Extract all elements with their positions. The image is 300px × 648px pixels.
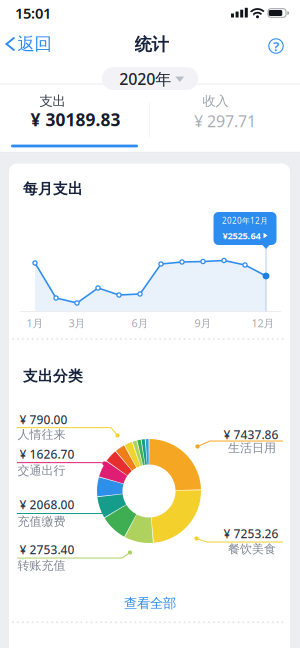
staticText: 人情往来 <box>17 427 65 442</box>
staticText: 12月 <box>251 316 274 330</box>
staticText: ¥ 1626.70 <box>19 446 74 462</box>
staticText: 交通出行 <box>17 463 65 478</box>
button[interactable]: 收入 <box>150 88 300 152</box>
staticText: 3月 <box>68 316 85 330</box>
staticText: 支出 <box>39 93 65 109</box>
staticText: 15:01 <box>15 3 51 23</box>
staticText: ¥ 30189.83 <box>30 108 120 131</box>
staticText: 支出分类 <box>23 367 83 385</box>
staticText: ? <box>273 37 279 55</box>
staticText: 1月 <box>26 316 43 330</box>
staticText: 查看全部 <box>124 595 176 611</box>
button[interactable]: 2020年 <box>102 67 198 90</box>
staticText: 每月支出 <box>23 180 83 198</box>
staticText: 生活日用 <box>228 441 276 455</box>
staticText: 6月 <box>131 316 148 330</box>
staticText: 充值缴费 <box>17 514 65 529</box>
staticText: ¥ 790.00 <box>19 411 67 427</box>
staticText: ¥ 7253.26 <box>223 525 278 541</box>
staticText: 2020年 <box>119 68 171 89</box>
staticText: ¥ 2068.00 <box>19 496 74 512</box>
button[interactable]: 帮助 <box>265 35 287 57</box>
staticText: 收入 <box>202 93 228 109</box>
staticText: 转账充值 <box>17 558 65 573</box>
staticText: 2020年12月 <box>222 215 268 226</box>
staticText: ¥ 7437.86 <box>223 426 278 442</box>
staticText: 统计 <box>134 34 168 55</box>
button[interactable]: 返回 <box>6 33 51 55</box>
staticText: ¥2525.64 <box>222 229 260 242</box>
staticText: ¥ 2753.40 <box>19 541 74 557</box>
staticText: 返回 <box>17 33 51 55</box>
staticText: ¥ 297.71 <box>194 110 256 132</box>
button[interactable]: 查看全部 <box>105 591 195 615</box>
staticText: 餐饮美食 <box>228 542 276 556</box>
staticText: 9月 <box>194 316 211 330</box>
button[interactable]: 支出 <box>0 88 150 152</box>
